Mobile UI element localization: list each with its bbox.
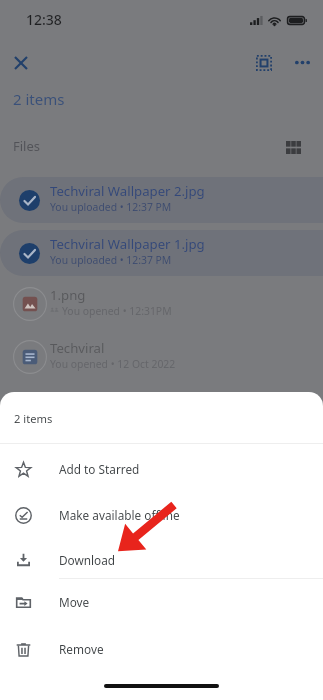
button[interactable]: Select all (249, 48, 278, 77)
staticText: Move (59, 594, 90, 610)
staticText: 1.png (50, 286, 86, 304)
button[interactable]: Move (0, 579, 323, 625)
staticText: Techviral (50, 339, 105, 357)
staticText: You opened • 12:31PM (62, 304, 172, 318)
staticText: Files (13, 137, 41, 155)
button[interactable]: 1.png (0, 287, 323, 321)
button[interactable]: Techviral Wallpaper 1.jpg (0, 230, 323, 276)
button[interactable]: Download (0, 537, 323, 583)
staticText: You uploaded • 12:37 PM (50, 200, 172, 214)
button[interactable]: More options (288, 48, 317, 77)
staticText: Add to Starred (59, 461, 140, 477)
staticText: Techviral Wallpaper 1.jpg (50, 235, 205, 253)
button[interactable]: Add to Starred (0, 446, 323, 492)
staticText: Remove (59, 641, 104, 657)
staticText: 12:38 (26, 10, 62, 29)
staticText: Make available offline (59, 507, 180, 523)
staticText: 2 items (14, 411, 53, 426)
button[interactable]: Close selection (6, 48, 35, 77)
staticText: Download (59, 552, 116, 568)
staticText: 2 items (13, 89, 65, 109)
staticText: Techviral Wallpaper 2.jpg (50, 182, 205, 200)
staticText: You opened • 12 Oct 2022 (50, 357, 176, 371)
staticText: You uploaded • 12:37 PM (50, 253, 172, 267)
button[interactable]: Techviral Wallpaper 2.jpg (0, 177, 323, 223)
button[interactable]: Switch to grid view (279, 133, 307, 161)
button[interactable]: Techviral (0, 340, 323, 374)
button[interactable]: Remove (0, 626, 323, 672)
button[interactable]: Make available offline (0, 492, 323, 538)
